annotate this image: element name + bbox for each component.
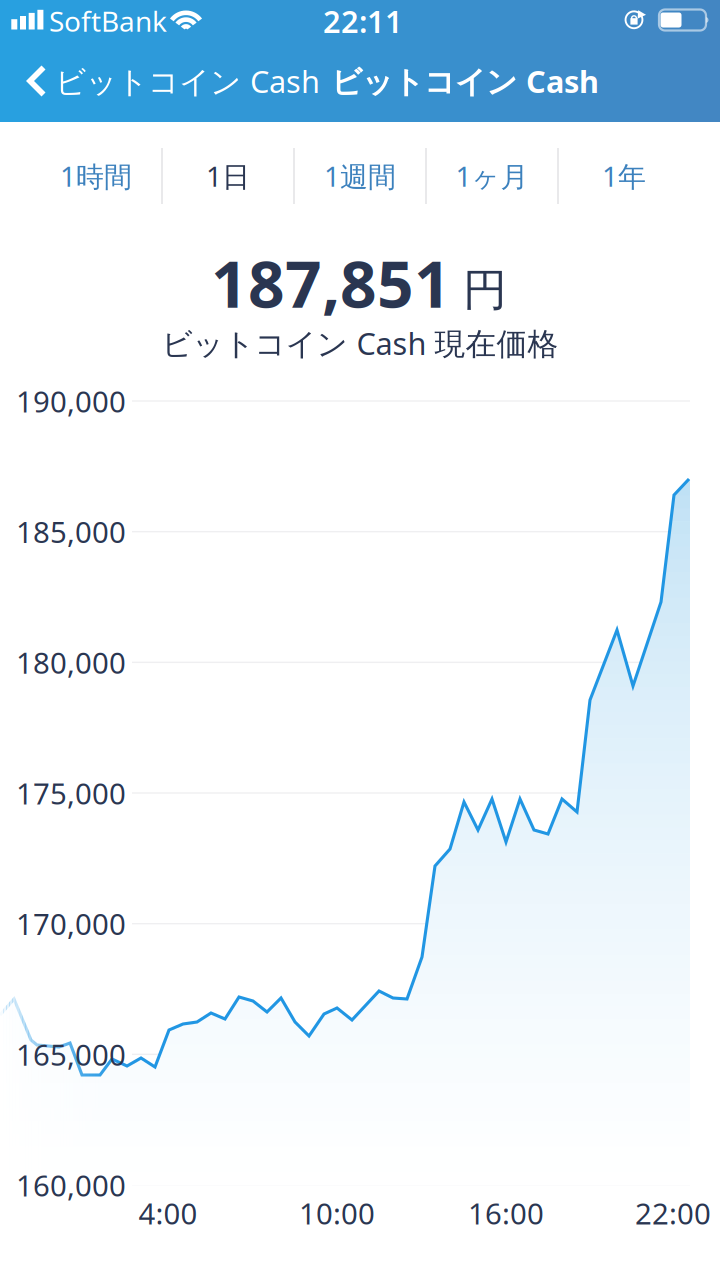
staticText: 1年 (602, 157, 646, 195)
staticText: ビットコイン Cash (331, 61, 599, 101)
button[interactable]: 1年 (558, 133, 690, 219)
staticText: 160,000 (16, 1165, 126, 1204)
staticText: 1時間 (60, 157, 132, 195)
staticText: 1日 (206, 157, 250, 195)
button[interactable]: 1週間 (294, 133, 426, 219)
staticText: ビットコイン Cash (55, 61, 320, 101)
staticText: 187,851 (211, 240, 451, 325)
staticText: 円 (463, 263, 507, 317)
button[interactable]: 1ヶ月 (426, 133, 558, 219)
button[interactable]: ビットコイン Cash (8, 52, 324, 110)
staticText: 1週間 (324, 157, 396, 195)
staticText: 22:11 (323, 1, 403, 41)
staticText: 1ヶ月 (455, 157, 528, 195)
staticText: 10:00 (299, 1193, 375, 1232)
staticText: 4:00 (138, 1193, 197, 1232)
staticText: 170,000 (16, 904, 126, 943)
staticText: ビットコイン Cash 現在価格 (161, 323, 558, 363)
button[interactable]: 1時間 (30, 133, 162, 219)
staticText: 22:00 (635, 1193, 711, 1232)
button[interactable]: 1日 (162, 133, 294, 219)
staticText: 190,000 (16, 381, 126, 420)
staticText: 185,000 (16, 512, 126, 551)
staticText: 180,000 (16, 643, 126, 682)
staticText: SoftBank (49, 2, 167, 40)
staticText: 165,000 (16, 1035, 126, 1074)
staticText: 16:00 (468, 1193, 544, 1232)
staticText: 175,000 (16, 773, 126, 812)
